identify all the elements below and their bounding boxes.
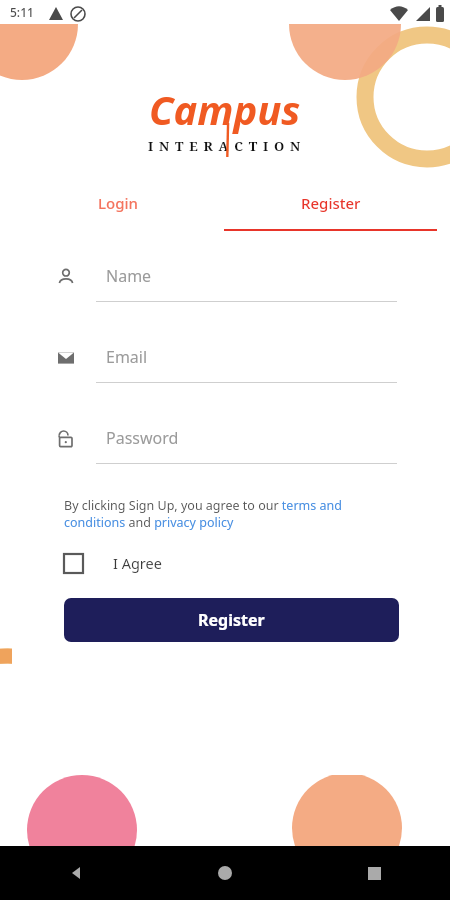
staticText: Register xyxy=(301,193,361,213)
button[interactable]: Home xyxy=(205,853,245,893)
staticText: I N T E R A C T I O N xyxy=(148,137,302,155)
staticText: Register xyxy=(198,609,265,631)
button[interactable]: Register xyxy=(64,598,399,642)
staticText: Email xyxy=(106,346,148,368)
staticText: Login xyxy=(98,193,138,213)
staticText: Name xyxy=(106,265,152,287)
button[interactable]: Back xyxy=(56,853,96,893)
staticText: By clicking Sign Up, you agree to our te… xyxy=(64,497,399,531)
button[interactable]: Login xyxy=(12,175,224,231)
staticText: I Agree xyxy=(113,553,162,573)
staticText: 5:11 xyxy=(10,4,34,20)
staticText: Password xyxy=(106,427,179,449)
staticText: Campus xyxy=(149,82,301,136)
button[interactable]: I Agree xyxy=(64,553,162,573)
button[interactable]: Register xyxy=(224,175,437,231)
button[interactable]: Recent apps xyxy=(354,853,394,893)
